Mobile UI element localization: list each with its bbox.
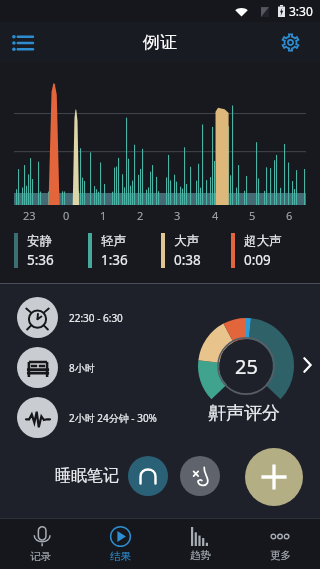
button[interactable]: Nasal — [180, 456, 220, 496]
staticText: 8小时 — [69, 361, 95, 375]
button[interactable]: 2小时 24分钟 - 30% — [17, 397, 157, 438]
staticText: 1:36 — [101, 251, 128, 269]
staticText: 6 — [286, 208, 293, 223]
staticText: 3 — [174, 208, 181, 223]
staticText: 更多 — [270, 549, 291, 562]
staticText: 睡眠笔记 — [55, 466, 119, 486]
button[interactable]: Menu — [6, 25, 40, 59]
staticText: 1 — [100, 208, 107, 223]
staticText: 4 — [212, 208, 219, 223]
button[interactable]: Mouthguard — [128, 456, 168, 496]
staticText: 大声 — [174, 233, 199, 249]
staticText: 0:38 — [174, 251, 201, 269]
button[interactable]: Add — [245, 448, 303, 506]
button[interactable]: 结果 — [80, 519, 160, 569]
staticText: 2 — [137, 208, 144, 223]
button[interactable]: 趋势 — [160, 519, 240, 569]
staticText: 例证 — [143, 32, 177, 53]
staticText: 结果 — [110, 550, 131, 563]
staticText: 0:09 — [244, 251, 271, 269]
staticText: 超大声 — [244, 233, 282, 249]
button[interactable]: 更多 — [240, 519, 320, 569]
staticText: 安静 — [27, 233, 52, 249]
staticText: 25 — [235, 353, 258, 380]
staticText: 3:30 — [289, 3, 313, 19]
button[interactable]: 记录 — [0, 519, 80, 569]
staticText: 记录 — [30, 550, 51, 563]
staticText: 5:36 — [27, 251, 54, 269]
button[interactable]: 8小时 — [17, 347, 95, 388]
button[interactable]: 22:30 - 6:30 — [17, 297, 123, 338]
staticText: 趋势 — [190, 549, 211, 562]
button[interactable]: Settings — [273, 25, 307, 59]
staticText: 轻声 — [101, 233, 126, 249]
staticText: 0 — [63, 208, 70, 223]
staticText: 5 — [249, 208, 256, 223]
staticText: 22:30 - 6:30 — [69, 311, 123, 325]
staticText: 23 — [23, 208, 36, 223]
staticText: 2小时 24分钟 - 30% — [69, 411, 157, 425]
button[interactable]: Details — [298, 356, 316, 374]
staticText: 鼾声评分 — [208, 402, 280, 425]
